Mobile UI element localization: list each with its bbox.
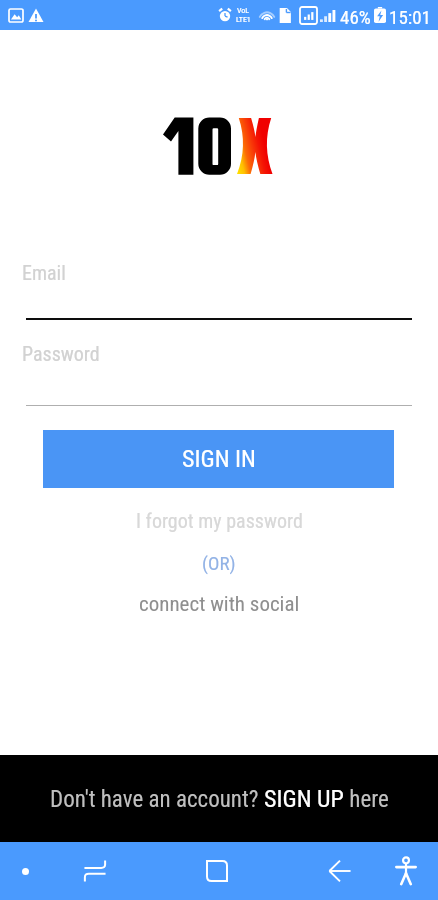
button[interactable]: Don't have an account? (0, 755, 438, 842)
staticText: VoL (237, 6, 250, 15)
staticText: LTE1 (236, 15, 251, 24)
staticText: connect with social (139, 592, 300, 617)
button[interactable]: SIGN IN (43, 430, 394, 488)
staticText: SIGN IN (182, 445, 256, 473)
staticText: Don't have an account? (50, 786, 264, 813)
button[interactable]: Menu (4, 842, 46, 900)
staticText: (OR) (202, 552, 236, 574)
staticText: SIGN UP (264, 785, 344, 813)
staticText: 46% (340, 6, 371, 28)
staticText: Password (22, 342, 100, 365)
button[interactable]: I forgot my password (0, 505, 438, 535)
staticText: Email (22, 261, 66, 284)
staticText: 15:01 (389, 6, 431, 28)
button[interactable]: Email (0, 250, 438, 320)
button[interactable]: Back (317, 842, 363, 900)
staticText: here (344, 786, 389, 813)
button[interactable]: Switch apps (72, 842, 118, 900)
staticText: I forgot my password (136, 509, 303, 532)
button[interactable]: Password (0, 331, 438, 407)
button[interactable]: connect with social (0, 589, 438, 619)
button[interactable]: Accessibility (383, 842, 429, 900)
button[interactable]: Recent apps (194, 842, 240, 900)
